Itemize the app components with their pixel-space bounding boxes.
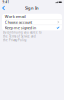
staticText: Sign In xyxy=(25,5,39,11)
staticText: 9:41 xyxy=(2,0,9,4)
staticText: Work email xyxy=(5,14,26,19)
staticText: By continuing you agree to xyxy=(3,31,42,34)
staticText: Choose account xyxy=(5,19,32,25)
staticText: the Privacy Policy. xyxy=(3,38,27,42)
staticText: Keep me signed in xyxy=(5,25,36,30)
button[interactable]: Keep me signed in xyxy=(2,25,62,30)
button[interactable]: Work email xyxy=(2,14,62,19)
staticText: the Terms of Service and xyxy=(3,35,36,38)
button[interactable]: Choose account xyxy=(2,19,62,25)
button[interactable]: Back xyxy=(0,4,8,12)
